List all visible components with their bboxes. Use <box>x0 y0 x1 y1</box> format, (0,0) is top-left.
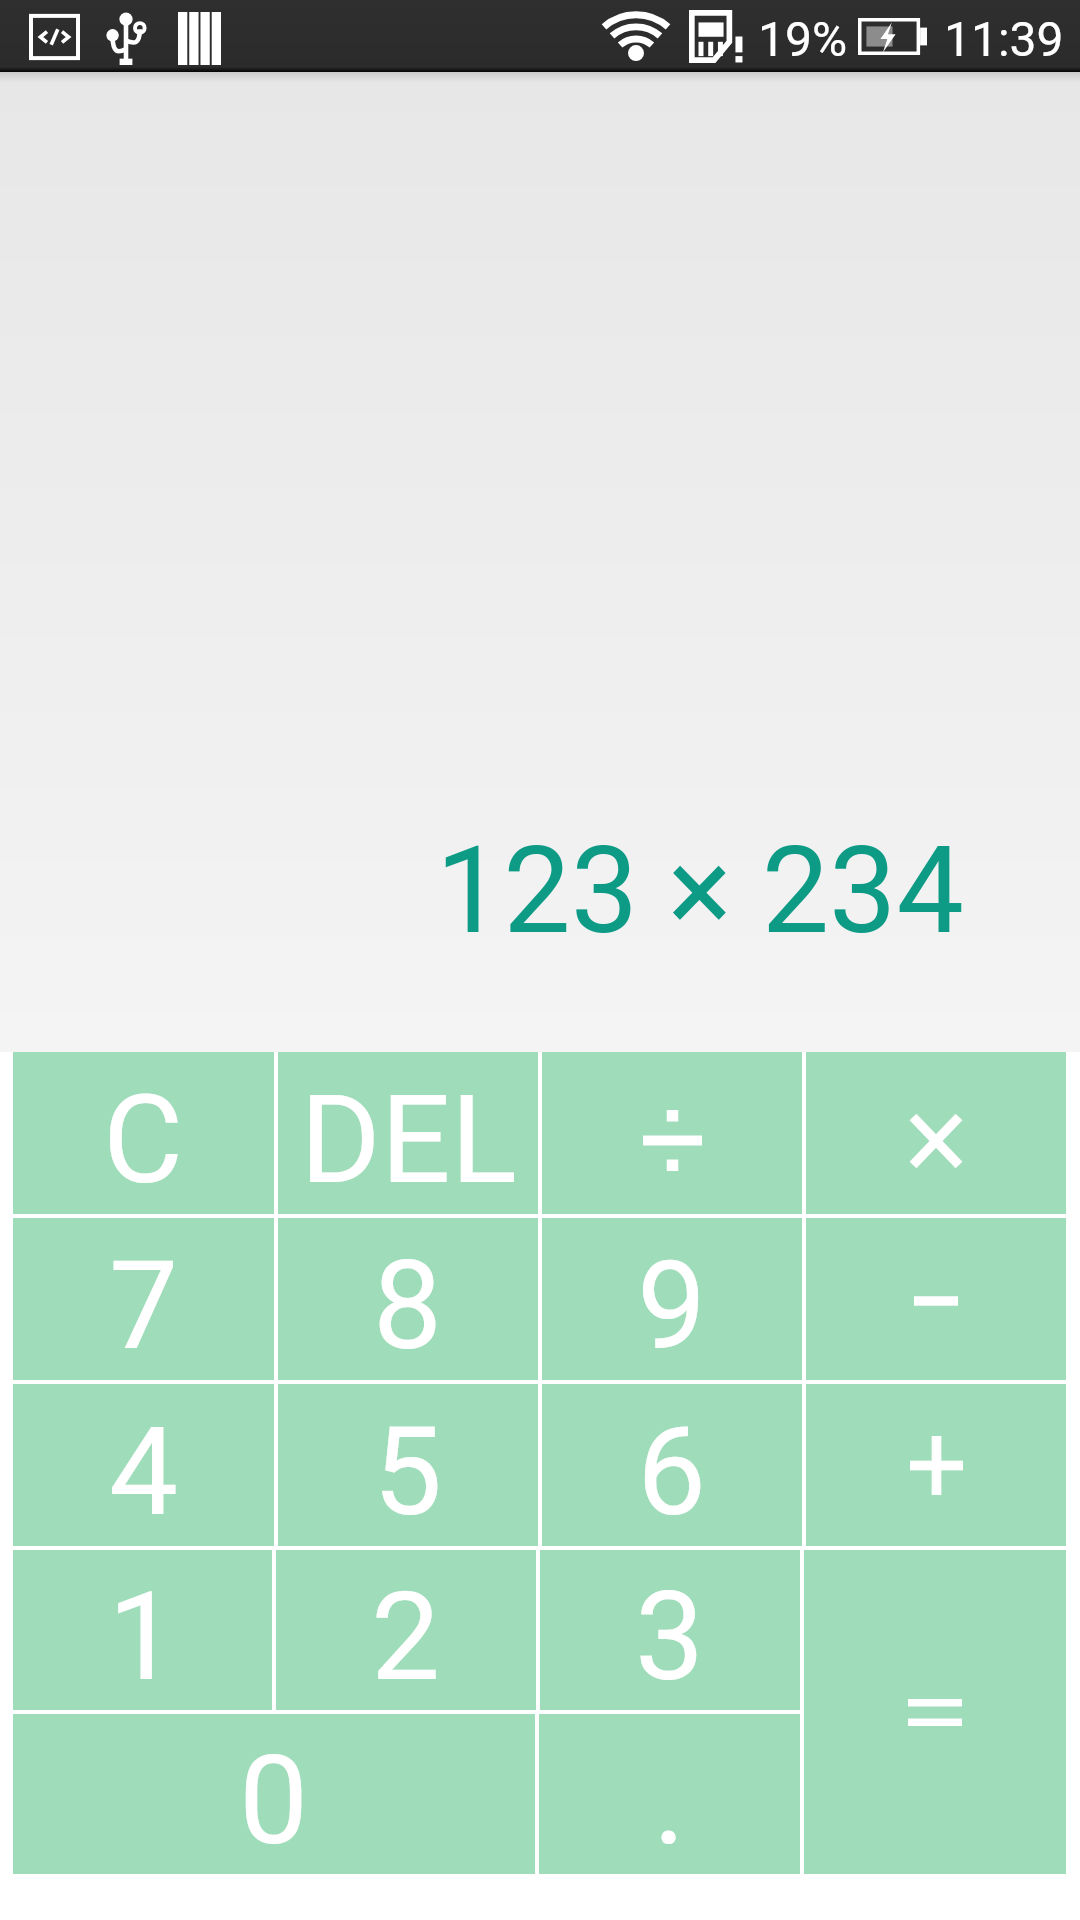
button[interactable]: 5 <box>278 1384 538 1546</box>
staticText: 7 <box>109 1234 179 1378</box>
staticText: 0 <box>239 1729 309 1873</box>
other: USB connected <box>106 12 146 65</box>
button[interactable]: 4 <box>13 1384 274 1546</box>
button[interactable]: . <box>539 1714 800 1874</box>
button[interactable]: Equals <box>804 1550 1066 1874</box>
staticText: 9 <box>637 1234 707 1378</box>
button[interactable]: DEL <box>278 1052 538 1214</box>
staticText: 6 <box>637 1400 707 1544</box>
staticText: C <box>103 1068 184 1212</box>
staticText: 8 <box>373 1234 443 1378</box>
staticText: 4 <box>109 1400 179 1544</box>
other: SD card warning <box>689 10 743 63</box>
staticText: 1 <box>108 1565 178 1709</box>
button[interactable]: Minus <box>806 1218 1066 1380</box>
staticText: 3 <box>635 1565 705 1709</box>
staticText: 11:39 <box>944 11 1064 67</box>
other: Battery charging <box>858 18 927 55</box>
staticText: 5 <box>373 1400 443 1544</box>
button[interactable]: 3 <box>540 1550 800 1710</box>
staticText: 2 <box>371 1565 441 1709</box>
button[interactable]: 2 <box>276 1550 536 1710</box>
button[interactable]: Plus <box>806 1384 1066 1546</box>
button[interactable]: 7 <box>13 1218 274 1380</box>
other: Developer options <box>31 13 78 61</box>
button[interactable]: 0 <box>13 1714 535 1874</box>
button[interactable]: Multiply <box>806 1052 1066 1214</box>
staticText: 123 × 234 <box>0 821 964 962</box>
other: Screen recorder <box>178 12 221 65</box>
staticText: . <box>653 1729 686 1873</box>
button[interactable]: 8 <box>278 1218 538 1380</box>
button[interactable]: 1 <box>13 1550 272 1710</box>
staticText: DEL <box>300 1068 517 1212</box>
button[interactable]: 9 <box>542 1218 802 1380</box>
button[interactable]: C <box>13 1052 274 1214</box>
other: Wi-Fi <box>604 9 668 63</box>
staticText: 19% <box>758 11 848 67</box>
button[interactable]: 6 <box>542 1384 802 1546</box>
button[interactable]: Divide <box>542 1052 802 1214</box>
